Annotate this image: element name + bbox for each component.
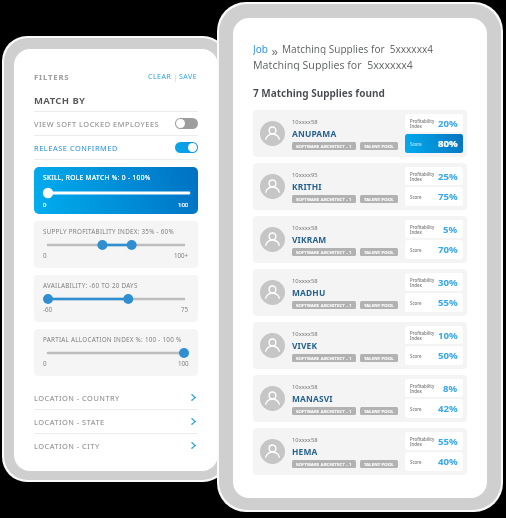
staticText: LOCATION - STATE xyxy=(34,417,105,427)
staticText: | xyxy=(172,73,179,82)
staticText: 0 xyxy=(43,201,47,209)
staticText: 10xxxx58 xyxy=(292,277,318,285)
staticText: HEMA xyxy=(292,446,318,457)
staticText: Profitability Index xyxy=(410,171,435,182)
button[interactable]: SKILL, ROLE MATCH %: 0 - 100% xyxy=(34,167,198,214)
staticText: Score xyxy=(410,194,422,200)
other: Profile xyxy=(260,333,285,358)
button[interactable]: LOCATION - COUNTRY xyxy=(14,386,218,410)
staticText: 8% xyxy=(443,382,458,395)
staticText: Score xyxy=(410,300,422,306)
staticText: SOFTWARE ARCHITECT - 1 xyxy=(296,143,352,149)
staticText: SOFTWARE ARCHITECT - 1 xyxy=(296,408,352,414)
staticText: » xyxy=(268,42,282,55)
staticText: MADHU xyxy=(292,287,326,298)
staticText: 10xxxx58 xyxy=(292,436,318,444)
staticText: 10xxxx58 xyxy=(292,383,318,391)
staticText: Score xyxy=(410,459,422,465)
button[interactable]: VIEW SOFT LOCKED EMPLOYEES xyxy=(14,111,218,135)
staticText: 10xxxx58 xyxy=(292,330,318,338)
other: Profile xyxy=(260,280,285,305)
staticText: TALENT POOL xyxy=(364,408,394,414)
staticText: Job xyxy=(253,42,268,55)
staticText: 100+ xyxy=(174,251,189,259)
staticText: LOCATION - CITY xyxy=(34,441,100,451)
staticText: Profitability Index xyxy=(410,383,435,394)
button[interactable]: LOCATION - CITY xyxy=(14,434,218,457)
staticText: 10% xyxy=(438,329,458,342)
staticText: Profitability Index xyxy=(410,277,435,288)
button[interactable]: PARTIAL ALLOCATION INDEX %: 100 - 100 % xyxy=(34,329,198,376)
staticText: 7 Matching Supplies found xyxy=(253,86,385,100)
staticText: MATCH BY xyxy=(34,94,86,107)
button[interactable]: Profile xyxy=(253,216,467,263)
button[interactable]: SAVE xyxy=(179,72,198,82)
staticText: 5% xyxy=(443,223,458,236)
button[interactable]: Job xyxy=(253,42,268,55)
staticText: Matching Supplies for 5xxxxxx4 xyxy=(282,42,433,55)
staticText: SOFTWARE ARCHITECT - 1 xyxy=(296,196,352,202)
staticText: AVAILABILITY: -60 TO 20 DAYS xyxy=(43,281,138,290)
other: Profile xyxy=(260,386,285,411)
staticText: 55% xyxy=(438,435,458,448)
staticText: 0 xyxy=(43,251,47,259)
staticText: 100 xyxy=(178,201,189,209)
staticText: 40% xyxy=(438,455,458,468)
staticText: VIKRAM xyxy=(292,234,327,245)
button[interactable]: AVAILABILITY: -60 TO 20 DAYS xyxy=(34,275,198,322)
staticText: Matching Supplies for 5xxxxxx4 xyxy=(253,58,413,71)
staticText: 55% xyxy=(438,296,458,309)
staticText: MANASVI xyxy=(292,393,333,404)
button[interactable]: Profile xyxy=(253,322,467,369)
button[interactable]: Profile xyxy=(253,163,467,210)
staticText: Score xyxy=(410,141,422,147)
button[interactable]: Profile xyxy=(253,375,467,422)
button[interactable]: CLEAR xyxy=(148,72,172,82)
button[interactable]: RELEASE CONFIRMED xyxy=(14,135,218,159)
staticText: Score xyxy=(410,353,422,359)
staticText: SAVE xyxy=(179,72,198,82)
staticText: VIEW SOFT LOCKED EMPLOYEES xyxy=(34,119,160,129)
staticText: 0 xyxy=(43,359,47,367)
staticText: 75 xyxy=(181,305,189,313)
staticText: SOFTWARE ARCHITECT - 1 xyxy=(296,302,352,308)
staticText: 50% xyxy=(438,349,458,362)
staticText: ANUPAMA xyxy=(292,128,337,139)
staticText: TALENT POOL xyxy=(364,249,394,255)
staticText: Profitability Index xyxy=(410,330,435,341)
button[interactable]: Profile xyxy=(253,269,467,316)
other: Profile xyxy=(260,439,285,464)
staticText: Profitability Index xyxy=(410,118,435,129)
staticText: RELEASE CONFIRMED xyxy=(34,143,118,153)
staticText: SOFTWARE ARCHITECT - 1 xyxy=(296,249,352,255)
staticText: 10xxxx95 xyxy=(292,171,318,179)
staticText: 75% xyxy=(438,190,458,203)
button[interactable]: SUPPLY PROFITABILITY INDEX: 35% - 60% xyxy=(34,221,198,268)
staticText: SKILL, ROLE MATCH %: 0 - 100% xyxy=(43,173,151,182)
staticText: Score xyxy=(410,247,422,253)
button[interactable]: LOCATION - STATE xyxy=(14,410,218,434)
other: Profile xyxy=(260,174,285,199)
staticText: TALENT POOL xyxy=(364,143,394,149)
staticText: 20% xyxy=(438,117,458,130)
staticText: VIVEK xyxy=(292,340,318,351)
other: Profile xyxy=(260,227,285,252)
staticText: PARTIAL ALLOCATION INDEX %: 100 - 100 % xyxy=(43,335,182,344)
staticText: TALENT POOL xyxy=(364,196,394,202)
button[interactable]: Profile xyxy=(253,428,467,475)
staticText: KRITHI xyxy=(292,181,322,192)
staticText: SUPPLY PROFITABILITY INDEX: 35% - 60% xyxy=(43,227,174,236)
staticText: 42% xyxy=(438,402,458,415)
staticText: 100 xyxy=(178,359,189,367)
staticText: CLEAR xyxy=(148,72,172,82)
staticText: TALENT POOL xyxy=(364,355,394,361)
staticText: TALENT POOL xyxy=(364,461,394,467)
staticText: 70% xyxy=(438,243,458,256)
staticText: 30% xyxy=(438,276,458,289)
other: Profile xyxy=(260,121,285,146)
staticText: 25% xyxy=(438,170,458,183)
button[interactable]: Profile xyxy=(253,110,467,157)
staticText: -60 xyxy=(43,305,53,313)
staticText: FILTERS xyxy=(34,72,70,83)
staticText: SOFTWARE ARCHITECT - 1 xyxy=(296,355,352,361)
